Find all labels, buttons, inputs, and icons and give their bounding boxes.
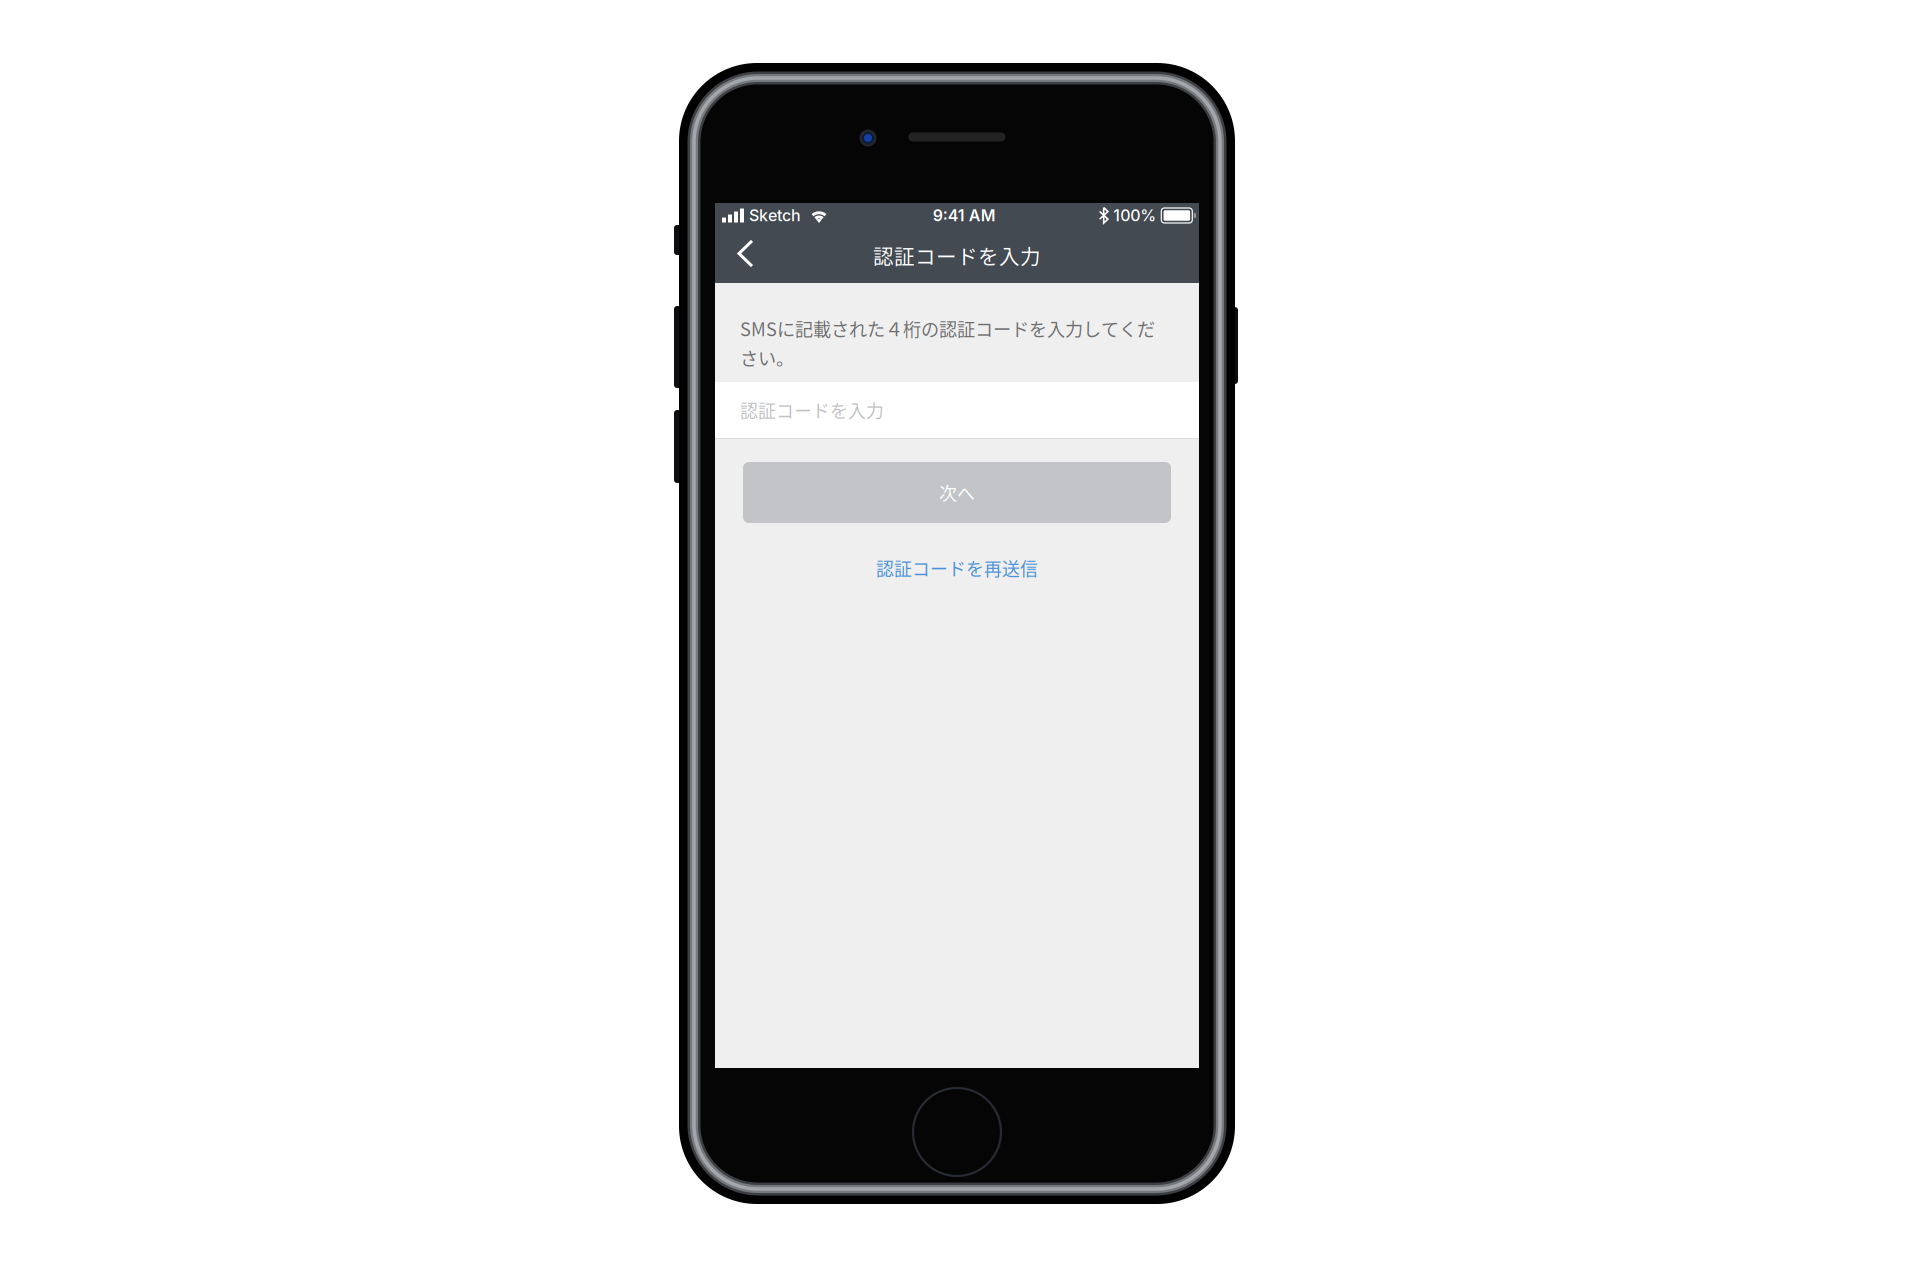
- staticText: 認証コードを再送信: [876, 555, 1038, 581]
- staticText: 認証コードを入力: [873, 241, 1041, 270]
- staticText: 認証コードを入力: [740, 397, 884, 423]
- staticText: Sketch: [749, 206, 801, 225]
- staticText: SMSに記載された４桁の認証コードを入力してください。: [740, 315, 1155, 371]
- staticText: 9:41 AM: [933, 206, 996, 225]
- button[interactable]: 認証コードを入力: [715, 382, 1199, 438]
- staticText: 次へ: [939, 480, 975, 505]
- staticText: 100%: [1113, 206, 1156, 225]
- button[interactable]: 認証コードを再送信: [856, 549, 1058, 587]
- button[interactable]: Back: [715, 228, 771, 283]
- button[interactable]: 次へ: [743, 462, 1171, 523]
